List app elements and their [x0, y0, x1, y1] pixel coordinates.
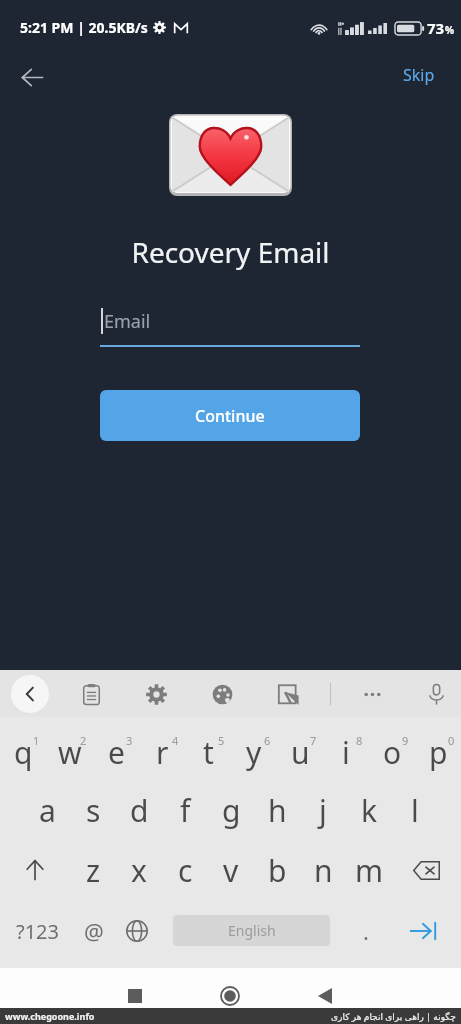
button[interactable]: y [231, 723, 277, 781]
button[interactable]: Backspace [392, 841, 461, 899]
staticText: f [180, 790, 191, 831]
staticText: m [355, 850, 384, 891]
button[interactable]: n [300, 841, 346, 899]
staticText: 6 [264, 733, 271, 748]
button[interactable]: m [346, 841, 392, 899]
button[interactable]: s [70, 781, 116, 839]
button[interactable]: b [254, 841, 300, 899]
staticText: Skip [403, 64, 435, 86]
button[interactable]: l [392, 781, 438, 839]
staticText: n [314, 850, 333, 891]
staticText: k [361, 790, 378, 831]
staticText: 2 [80, 733, 87, 748]
button[interactable]: Settings [138, 676, 174, 712]
staticText: 3 [126, 733, 133, 748]
button[interactable]: i [323, 723, 369, 781]
button[interactable]: o [369, 723, 415, 781]
staticText: t [203, 732, 214, 773]
staticText: o [383, 732, 402, 773]
staticText: v [223, 850, 239, 891]
button[interactable]: d [116, 781, 162, 839]
staticText: j [319, 790, 327, 831]
button[interactable]: ?123 [8, 907, 66, 955]
button[interactable]: p [415, 723, 461, 781]
staticText: c [178, 850, 193, 891]
button[interactable]: r [139, 723, 185, 781]
button[interactable]: Back [14, 59, 50, 95]
staticText: 5 [218, 733, 225, 748]
staticText: English [228, 921, 276, 940]
button[interactable]: Back [305, 976, 345, 1016]
staticText: Recovery Email [131, 233, 330, 271]
staticText: d [130, 790, 149, 831]
staticText: b [268, 850, 287, 891]
button[interactable]: @ [72, 907, 116, 955]
staticText: Email [104, 309, 151, 334]
button[interactable]: Clipboard [73, 676, 109, 712]
staticText: u [291, 732, 310, 773]
button[interactable]: k [346, 781, 392, 839]
staticText: a [39, 790, 56, 831]
staticText: 8 [356, 733, 363, 748]
staticText: g [222, 790, 241, 831]
button[interactable]: u [277, 723, 323, 781]
staticText: . [363, 916, 369, 946]
button[interactable]: a [24, 781, 70, 839]
staticText: w [58, 732, 82, 773]
button[interactable]: c [162, 841, 208, 899]
button[interactable]: Recents [115, 976, 155, 1016]
staticText: e [108, 732, 125, 773]
button[interactable]: More options [354, 676, 390, 712]
button[interactable]: Shift [0, 841, 70, 899]
button[interactable]: h [254, 781, 300, 839]
staticText: h [268, 790, 287, 831]
staticText: چگونه | راهی برای انجام هر کاری [331, 1010, 456, 1022]
button[interactable]: g [208, 781, 254, 839]
staticText: l [411, 790, 419, 831]
staticText: y [246, 732, 262, 773]
button[interactable]: f [162, 781, 208, 839]
staticText: 9 [402, 733, 409, 748]
button[interactable]: English [173, 915, 330, 946]
button[interactable]: . [346, 907, 386, 955]
staticText: ?123 [16, 918, 59, 945]
button[interactable]: Continue [100, 390, 360, 441]
staticText: 1 [33, 733, 40, 748]
staticText: 7 [310, 733, 317, 748]
staticText: i [342, 732, 350, 773]
button[interactable]: v [208, 841, 254, 899]
staticText: @ [84, 916, 104, 946]
button[interactable]: t [185, 723, 231, 781]
button[interactable]: Skip [403, 64, 435, 86]
button[interactable]: Resize keyboard [270, 676, 306, 712]
staticText: www.chegoone.info [5, 1010, 95, 1022]
button[interactable]: Voice input [418, 676, 454, 712]
staticText: q [14, 732, 33, 773]
button[interactable]: Home [210, 976, 250, 1016]
button[interactable]: Change language [115, 907, 159, 955]
staticText: 0 [448, 733, 455, 748]
button[interactable]: x [116, 841, 162, 899]
button[interactable]: Next field [399, 907, 449, 955]
button[interactable]: e [93, 723, 139, 781]
button[interactable]: w [47, 723, 93, 781]
staticText: % [445, 23, 455, 37]
staticText: 5:21 PM | 20.5KB/s [20, 18, 148, 37]
staticText: 4 [172, 733, 179, 748]
button[interactable]: z [70, 841, 116, 899]
staticText: r [156, 732, 169, 773]
staticText: s [86, 790, 101, 831]
button[interactable]: j [300, 781, 346, 839]
button[interactable]: Themes [204, 676, 240, 712]
staticText: z [86, 850, 101, 891]
button[interactable]: Close toolbar [11, 675, 49, 713]
staticText: 73 [427, 18, 445, 38]
staticText: p [429, 732, 448, 773]
staticText: x [131, 850, 147, 891]
staticText: Continue [195, 405, 265, 427]
button[interactable]: q [0, 723, 47, 781]
